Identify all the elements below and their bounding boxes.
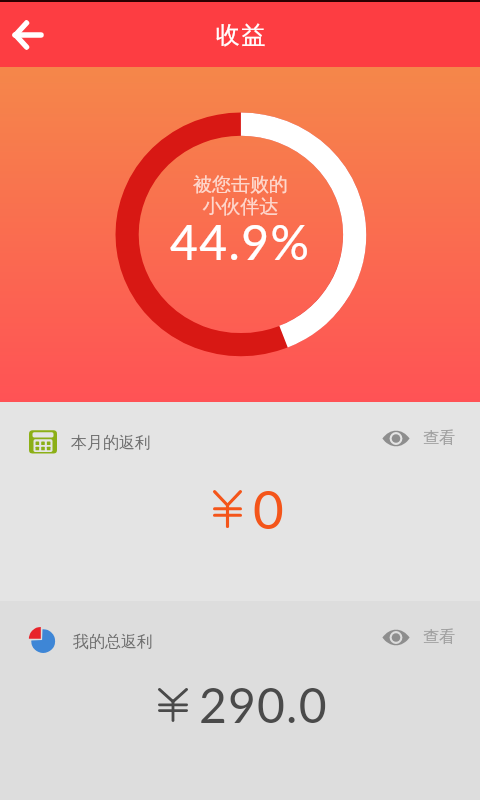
button[interactable]: 查看	[382, 627, 455, 647]
staticText: 被您击败的 小伙伴达	[193, 173, 288, 218]
staticText: 290.0	[199, 676, 328, 734]
button[interactable]: 查看	[382, 428, 455, 448]
staticText: 收益	[215, 20, 266, 50]
staticText: 本月的返利	[71, 433, 151, 453]
staticText: 查看	[423, 627, 455, 647]
staticText: 0	[253, 477, 284, 541]
staticText: 44.9%	[170, 213, 311, 271]
staticText: 查看	[423, 428, 455, 448]
button[interactable]: Back	[3, 11, 51, 59]
staticText: 我的总返利	[73, 632, 153, 652]
